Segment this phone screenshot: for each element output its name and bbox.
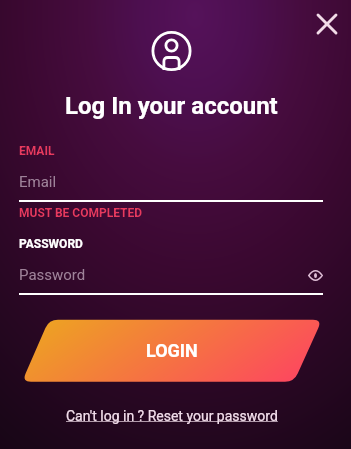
staticText: Can't log in ? Reset your password — [66, 408, 278, 424]
button[interactable]: LOGIN — [0, 318, 351, 383]
staticText: PASSWORD — [19, 237, 83, 251]
button[interactable]: Can't log in ? Reset your password — [66, 408, 278, 424]
button[interactable]: Show password — [303, 263, 327, 287]
staticText: MUST BE COMPLETED — [19, 206, 143, 220]
staticText: LOGIN — [146, 340, 198, 361]
staticText: Email — [19, 173, 57, 191]
staticText: Password — [19, 266, 86, 284]
staticText: EMAIL — [19, 144, 55, 158]
button[interactable]: Close — [308, 6, 344, 42]
staticText: Log In your account — [65, 92, 278, 120]
